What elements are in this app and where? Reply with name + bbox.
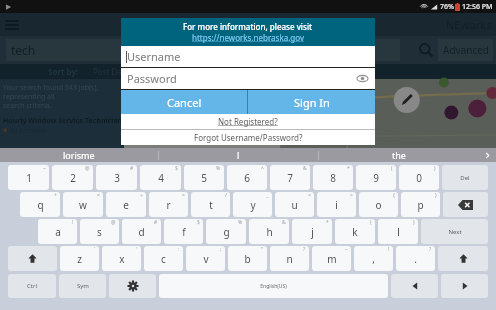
staticText: ( [391,165,393,172]
button[interactable]: Right [441,274,488,298]
button[interactable]: ~ [312,246,351,271]
button[interactable]: " [228,246,267,271]
button[interactable]: / [191,192,230,217]
button[interactable]: Password [121,68,375,89]
button[interactable]: ' [102,246,141,271]
button[interactable]: × [63,192,103,217]
staticText: n [286,252,293,266]
button[interactable]: lorisme [0,148,158,162]
button[interactable]: English(US) [159,274,388,298]
staticText: q [37,198,44,212]
button[interactable]: Cancel [121,90,247,114]
button[interactable]: Sym [59,274,106,298]
button[interactable]: ! [38,219,77,244]
button[interactable]: * [313,165,353,190]
staticText: ) [413,219,415,226]
staticText: # [154,219,158,226]
button[interactable]: Forgot Username/Password? [121,130,375,145]
button[interactable]: ÷ [106,192,146,217]
staticText: ? [303,246,306,253]
button[interactable]: ! [354,246,393,271]
button[interactable]: ` [60,246,99,271]
button[interactable]: Settings [109,274,156,298]
button[interactable]: @ [52,165,93,190]
staticText: g [223,225,230,239]
staticText: # [130,165,134,172]
button[interactable]: ? [396,246,435,271]
button[interactable]: : [144,246,183,271]
button[interactable]: ) [378,219,418,244]
button[interactable]: ~ [8,165,49,190]
button[interactable]: _ [233,192,272,217]
button[interactable]: Left [391,274,438,298]
staticText: @ [85,165,90,172]
button[interactable]: % [206,219,246,244]
button[interactable]: Shift [8,246,57,271]
staticText: * [347,165,350,172]
button[interactable]: l [159,148,318,162]
staticText: $ [197,219,200,226]
staticText: Sign In [294,95,330,110]
button[interactable]: # [122,219,161,244]
staticText: , [372,252,375,266]
staticText: Forgot Username/Password? [194,132,303,143]
button[interactable]: ? [270,246,309,271]
staticText: % [216,165,221,172]
button[interactable]: More suggestions [478,148,496,162]
staticText: & [282,219,286,226]
staticText: Password [127,71,177,86]
staticText: the [392,149,406,161]
button[interactable]: Del [442,165,488,190]
button[interactable]: @ [80,219,119,244]
staticText: * [326,219,329,226]
staticText: ! [388,246,390,253]
staticText: = [182,192,185,199]
staticText: ^ [261,165,264,172]
staticText: Sym [77,282,89,290]
staticText: ÷ [140,192,143,199]
button[interactable]: = [149,192,188,217]
staticText: ) [434,165,436,172]
staticText: https://neworks.nebraska.gov [192,32,304,43]
button[interactable]: ) [399,165,439,190]
button[interactable]: ( [356,165,396,190]
staticText: 12:56 PM [462,2,493,12]
staticText: + [54,192,57,199]
button[interactable]: } [401,192,440,217]
button[interactable]: & [270,165,310,190]
button[interactable]: Not Registered? [121,114,375,129]
button[interactable]: ; [186,246,225,271]
button[interactable]: $ [140,165,181,190]
button[interactable]: { [359,192,398,217]
button[interactable]: Shift [438,246,488,271]
staticText: 5 [201,171,207,185]
button[interactable]: + [20,192,60,217]
staticText: Cancel [167,95,202,110]
staticText: { [393,192,395,199]
staticText: b [244,252,251,266]
button[interactable]: the [319,148,478,162]
button[interactable]: ( [335,219,375,244]
button[interactable]: ^ [227,165,267,190]
button[interactable]: https://neworks.nebraska.gov [192,32,304,43]
button[interactable]: # [96,165,137,190]
staticText: e [123,198,129,212]
button[interactable]: & [249,219,289,244]
button[interactable]: % [184,165,224,190]
staticText: " [261,246,264,253]
staticText: u [291,198,298,212]
button[interactable]: Backspace [443,192,488,217]
button[interactable]: > [317,192,356,217]
button[interactable]: Next [421,219,488,244]
button[interactable]: Ctrl [8,274,56,298]
button[interactable]: * [292,219,332,244]
button[interactable]: < [275,192,314,217]
button[interactable]: Sign In [248,90,375,114]
staticText: v [203,252,209,266]
staticText: Hourly Window Service Technician [3,116,123,126]
button[interactable]: $ [164,219,203,244]
button[interactable]: Username [121,46,375,67]
